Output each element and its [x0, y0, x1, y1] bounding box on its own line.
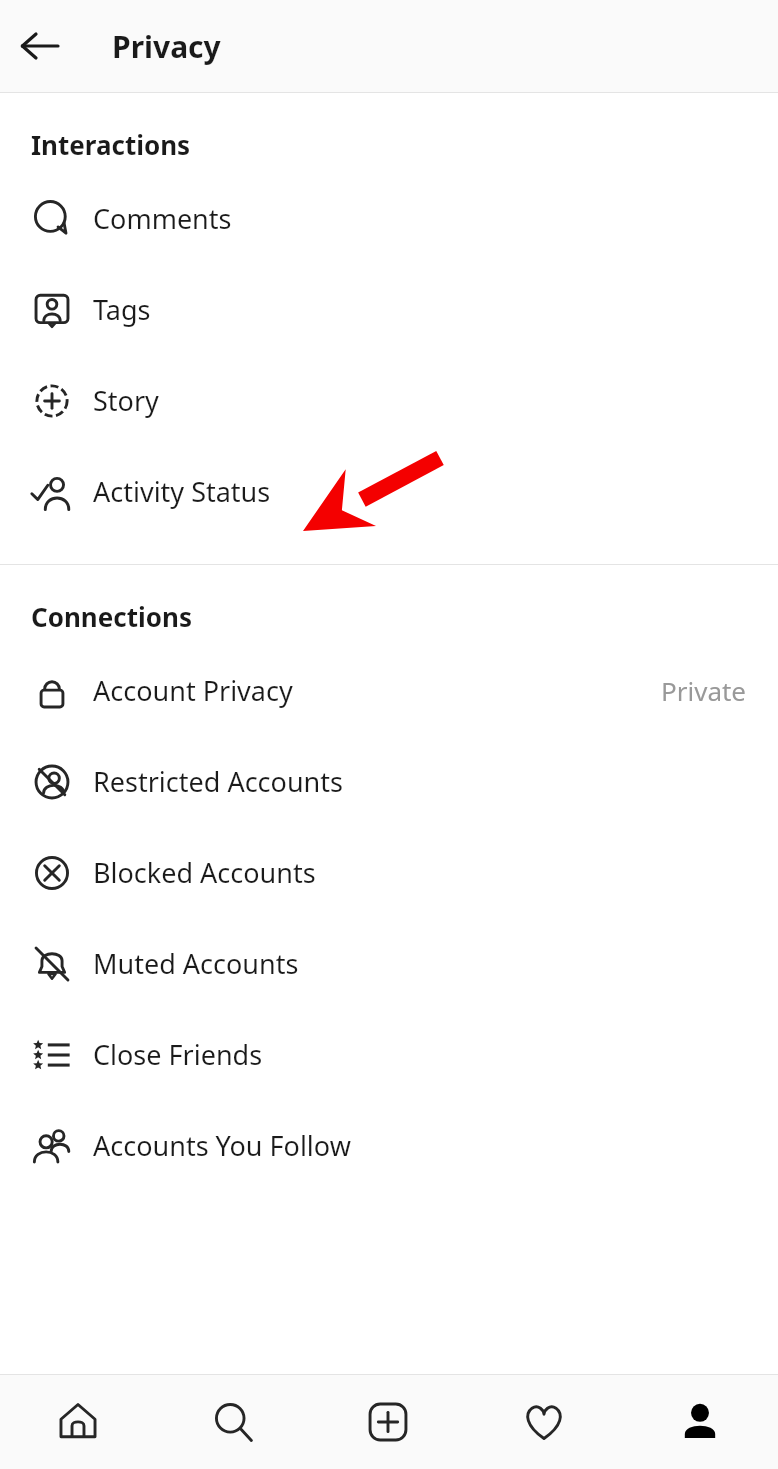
button[interactable]: Activity	[466, 1375, 622, 1469]
button[interactable]: Account Privacy	[0, 645, 778, 736]
staticText: Story	[93, 382, 159, 419]
button[interactable]: Profile	[622, 1375, 778, 1469]
button[interactable]: Back	[8, 14, 72, 78]
button[interactable]: Create	[310, 1375, 466, 1469]
button[interactable]: Accounts You Follow	[0, 1100, 778, 1191]
staticText: Restricted Accounts	[93, 763, 343, 800]
button[interactable]: Close Friends	[0, 1009, 778, 1100]
button[interactable]: Restricted Accounts	[0, 736, 778, 827]
staticText: Muted Accounts	[93, 945, 299, 982]
staticText: Account Privacy	[93, 672, 293, 709]
staticText: Close Friends	[93, 1036, 263, 1073]
staticText: Privacy	[112, 26, 221, 67]
button[interactable]: Home	[0, 1375, 155, 1469]
button[interactable]: Activity Status	[0, 446, 778, 537]
staticText: Activity Status	[93, 473, 271, 510]
button[interactable]: Blocked Accounts	[0, 827, 778, 918]
staticText: Interactions	[31, 127, 191, 162]
staticText: Connections	[31, 599, 192, 634]
staticText: Comments	[93, 200, 232, 237]
staticText: Tags	[93, 291, 151, 328]
button[interactable]: Tags	[0, 264, 778, 355]
button[interactable]: Story	[0, 355, 778, 446]
button[interactable]: Search	[155, 1375, 310, 1469]
button[interactable]: Muted Accounts	[0, 918, 778, 1009]
staticText: Accounts You Follow	[93, 1127, 351, 1164]
staticText: Blocked Accounts	[93, 854, 316, 891]
staticText: Private	[661, 673, 747, 708]
button[interactable]: Comments	[0, 173, 778, 264]
